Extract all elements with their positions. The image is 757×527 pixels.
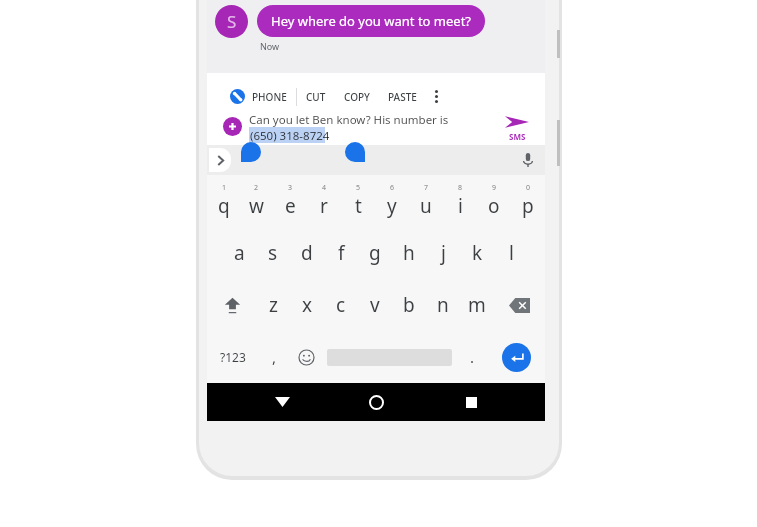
staticText: b — [403, 292, 415, 318]
button[interactable]: Back — [262, 383, 302, 421]
staticText: S — [227, 10, 237, 33]
button[interactable]: Shift — [207, 279, 257, 331]
button[interactable]: 2 — [240, 175, 273, 227]
button[interactable]: j — [426, 227, 460, 279]
staticText: 5 — [356, 183, 361, 193]
staticText: PASTE — [388, 90, 417, 104]
staticText: 7 — [424, 183, 429, 193]
staticText: i — [458, 193, 463, 219]
button[interactable]: b — [392, 279, 426, 331]
staticText: 0 — [526, 183, 531, 193]
button[interactable]: Voice input — [523, 153, 533, 167]
button[interactable]: Recent apps — [451, 383, 491, 421]
staticText: a — [234, 240, 245, 266]
button[interactable]: PHONE — [221, 81, 296, 112]
button[interactable]: . — [456, 331, 488, 383]
staticText: m — [468, 292, 486, 318]
staticText: 3 — [288, 183, 293, 193]
button[interactable]: m — [460, 279, 494, 331]
button[interactable]: Expand suggestions — [209, 148, 231, 172]
staticText: Can you let Ben know? His number is — [249, 112, 449, 128]
button[interactable]: CUT — [297, 81, 335, 112]
button[interactable]: c — [324, 279, 358, 331]
staticText: SMS — [509, 131, 526, 142]
button[interactable]: a — [223, 227, 256, 279]
staticText: t — [355, 193, 362, 219]
staticText: p — [522, 193, 534, 219]
staticText: Hey where do you want to meet? — [271, 12, 471, 30]
staticText: 4 — [322, 183, 327, 193]
button[interactable]: h — [392, 227, 426, 279]
staticText: . — [470, 347, 475, 367]
button[interactable]: 1 — [207, 175, 240, 227]
button[interactable]: d — [290, 227, 324, 279]
button[interactable]: Backspace — [494, 279, 545, 331]
button[interactable]: z — [257, 279, 290, 331]
button[interactable]: ?123 — [207, 331, 258, 383]
button[interactable]: 0 — [511, 175, 545, 227]
staticText: 6 — [390, 183, 395, 193]
button[interactable]: 6 — [375, 175, 409, 227]
button[interactable]: g — [358, 227, 392, 279]
staticText: COPY — [344, 90, 370, 104]
staticText: c — [336, 292, 346, 318]
staticText: u — [420, 193, 432, 219]
staticText: n — [437, 292, 449, 318]
staticText: l — [509, 240, 514, 266]
staticText: g — [369, 240, 381, 266]
staticText: v — [370, 292, 380, 318]
button[interactable]: 4 — [307, 175, 341, 227]
button[interactable]: Send SMS — [505, 113, 529, 142]
staticText: z — [269, 292, 278, 318]
staticText: w — [249, 193, 264, 219]
staticText: j — [441, 240, 446, 266]
button[interactable]: , — [258, 331, 290, 383]
staticText: y — [387, 193, 397, 219]
button[interactable]: Home — [356, 383, 396, 421]
button[interactable]: k — [460, 227, 494, 279]
staticText: s — [268, 240, 278, 266]
staticText: e — [285, 193, 296, 219]
staticText: 8 — [458, 183, 463, 193]
staticText: x — [302, 292, 313, 318]
staticText: 2 — [254, 183, 259, 193]
button[interactable]: COPY — [335, 81, 379, 112]
staticText: r — [320, 193, 328, 219]
button[interactable]: 5 — [341, 175, 375, 227]
button[interactable]: PASTE — [379, 81, 426, 112]
button[interactable]: s — [256, 227, 290, 279]
staticText: f — [338, 240, 345, 266]
button[interactable]: n — [426, 279, 460, 331]
staticText: 9 — [492, 183, 497, 193]
staticText: CUT — [306, 90, 326, 104]
staticText: q — [218, 193, 230, 219]
button[interactable]: More options — [426, 81, 446, 112]
button[interactable]: Enter — [488, 331, 545, 383]
button[interactable]: Add attachment — [223, 117, 242, 136]
button[interactable]: 9 — [477, 175, 511, 227]
staticText: d — [301, 240, 313, 266]
button[interactable]: 8 — [443, 175, 477, 227]
staticText: k — [472, 240, 483, 266]
staticText: (650) 318-8724 — [250, 128, 330, 144]
staticText: o — [488, 193, 500, 219]
button[interactable]: l — [494, 227, 528, 279]
staticText: , — [272, 347, 277, 367]
staticText: PHONE — [252, 90, 287, 104]
staticText: ?123 — [220, 349, 246, 365]
staticText: Now — [260, 40, 280, 52]
button[interactable]: x — [290, 279, 324, 331]
button[interactable]: Hey where do you want to meet? — [257, 5, 485, 37]
button[interactable]: Emoji — [290, 331, 322, 383]
button[interactable]: f — [324, 227, 358, 279]
staticText: h — [403, 240, 415, 266]
button[interactable]: v — [358, 279, 392, 331]
button[interactable]: 7 — [409, 175, 443, 227]
staticText: 1 — [222, 183, 227, 193]
button[interactable]: 3 — [273, 175, 307, 227]
button[interactable]: Space — [322, 331, 456, 383]
